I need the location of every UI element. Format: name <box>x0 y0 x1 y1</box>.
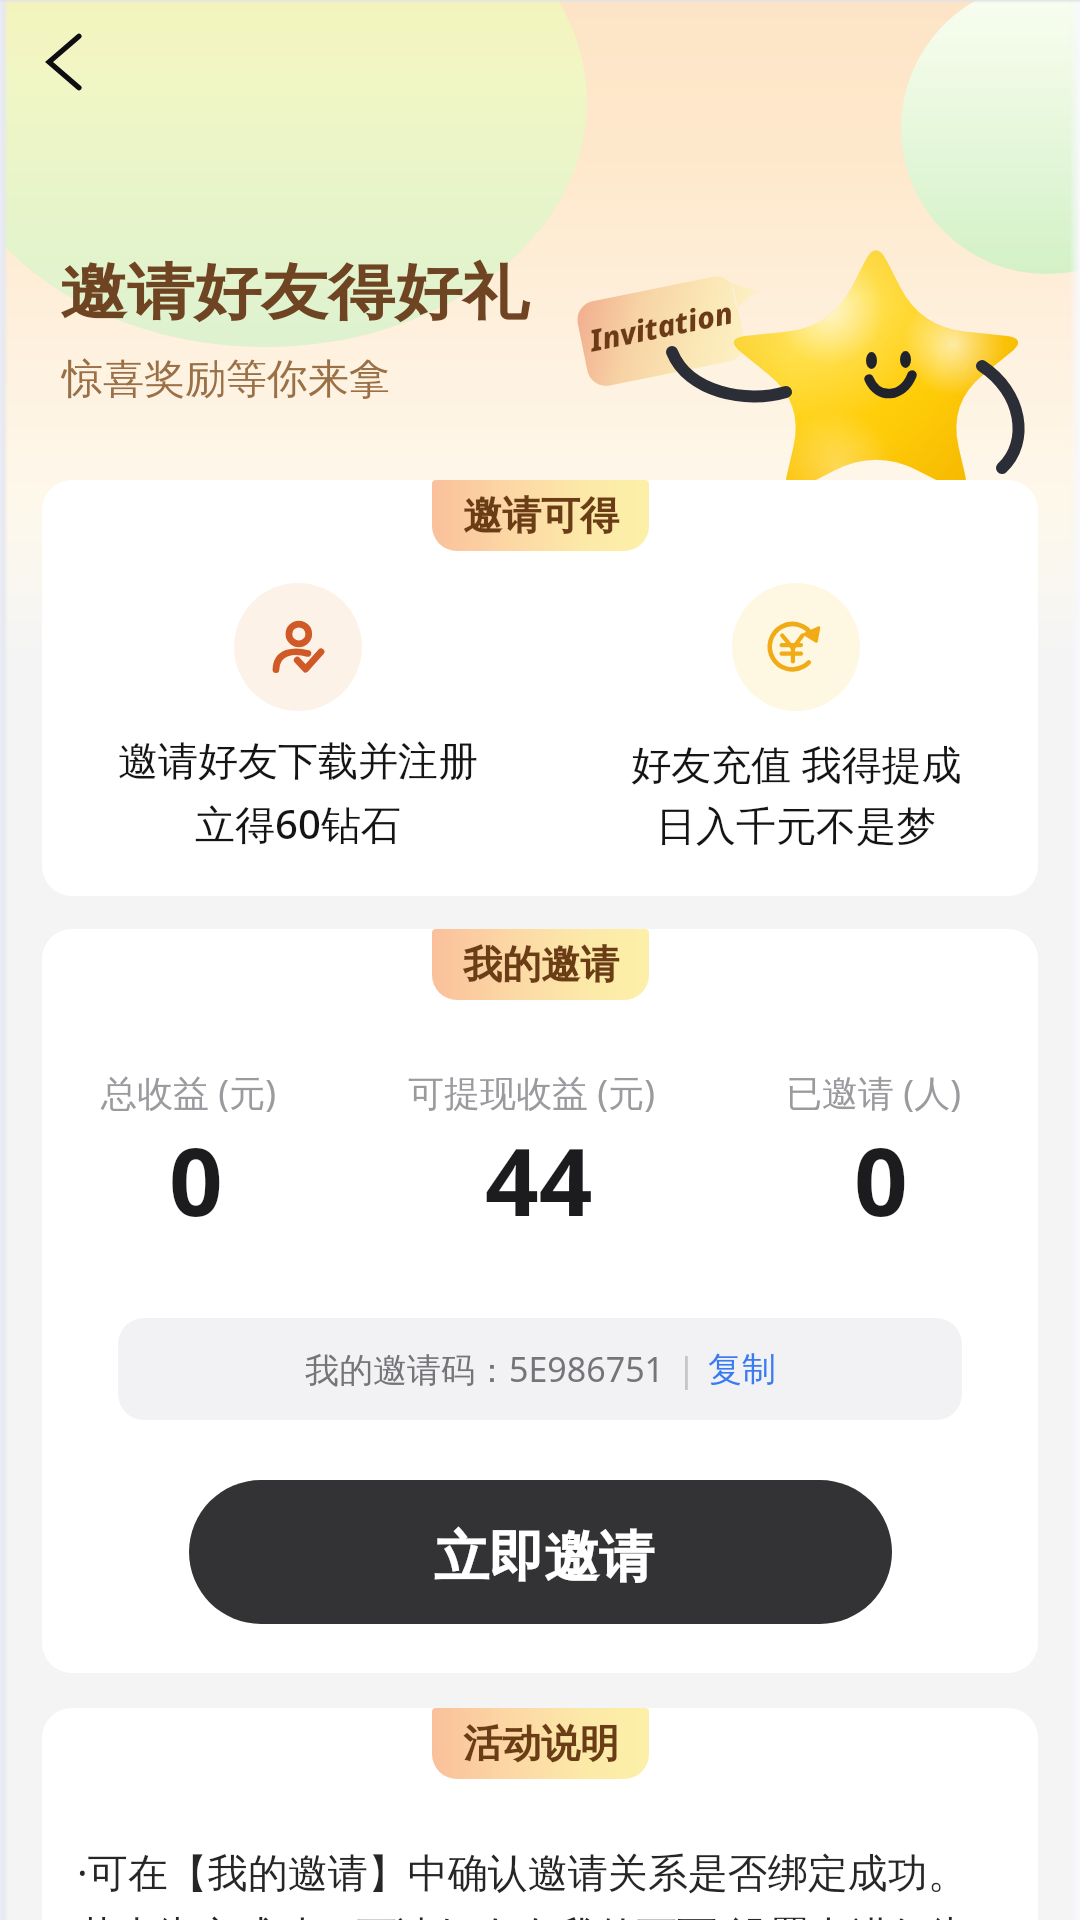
staticText: | <box>677 1346 696 1392</box>
staticText: 已邀请 (人) <box>786 1068 961 1117</box>
staticText: 0 <box>854 1116 908 1244</box>
staticText: 我的邀请 <box>463 940 619 989</box>
staticText: 44 <box>485 1116 593 1244</box>
button[interactable]: Back <box>24 22 104 102</box>
staticText: 邀请可得 <box>463 491 619 540</box>
button[interactable]: 我的邀请码：5E986751 <box>118 1318 962 1420</box>
staticText: 邀请好友下载并注册 <box>118 736 478 786</box>
staticText: 0 <box>169 1116 223 1244</box>
staticText: 日入千元不是梦 <box>656 801 936 851</box>
button[interactable]: 立即邀请 <box>189 1480 892 1624</box>
staticText: 若未绑定成功，可请好友在我的页面-设置中进行绑 <box>77 1907 970 1920</box>
staticText: 惊喜奖励等你来拿 <box>62 354 390 406</box>
staticText: 复制 <box>708 1348 776 1391</box>
staticText: ·可在【我的邀请】中确认邀请关系是否绑定成功。 <box>77 1844 968 1899</box>
staticText: 好友充值 我得提成 <box>631 736 962 791</box>
staticText: 可提现收益 (元) <box>408 1068 655 1117</box>
staticText: 总收益 (元) <box>101 1068 276 1117</box>
staticText: 邀请好友得好礼 <box>60 254 529 330</box>
staticText: 立得60钻石 <box>195 796 401 851</box>
staticText: 立即邀请 <box>434 1523 654 1592</box>
staticText: 我的邀请码：5E986751 <box>305 1346 665 1392</box>
staticText: Invitation <box>586 291 737 361</box>
staticText: 活动说明 <box>463 1719 619 1768</box>
